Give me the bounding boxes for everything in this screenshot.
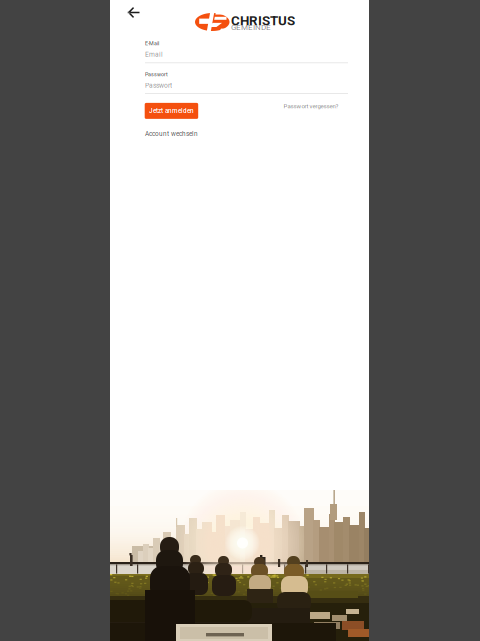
- staticText: GEMEINDE: [231, 23, 271, 32]
- button[interactable]: Back: [126, 5, 141, 20]
- button[interactable]: Jetzt anmelden: [145, 103, 198, 119]
- staticText: Passwort: [145, 71, 168, 77]
- staticText: Account wechseln: [145, 130, 198, 137]
- staticText: Passwort: [145, 82, 172, 89]
- staticText: Jetzt anmelden: [149, 107, 194, 115]
- staticText: Email: [145, 51, 163, 58]
- staticText: Passwort vergessen?: [283, 103, 338, 110]
- staticText: E-Mail: [145, 40, 159, 46]
- staticText: CHRISTUS: [231, 13, 295, 29]
- button[interactable]: Account wechseln: [145, 130, 198, 137]
- button[interactable]: Passwort vergessen?: [283, 103, 338, 110]
